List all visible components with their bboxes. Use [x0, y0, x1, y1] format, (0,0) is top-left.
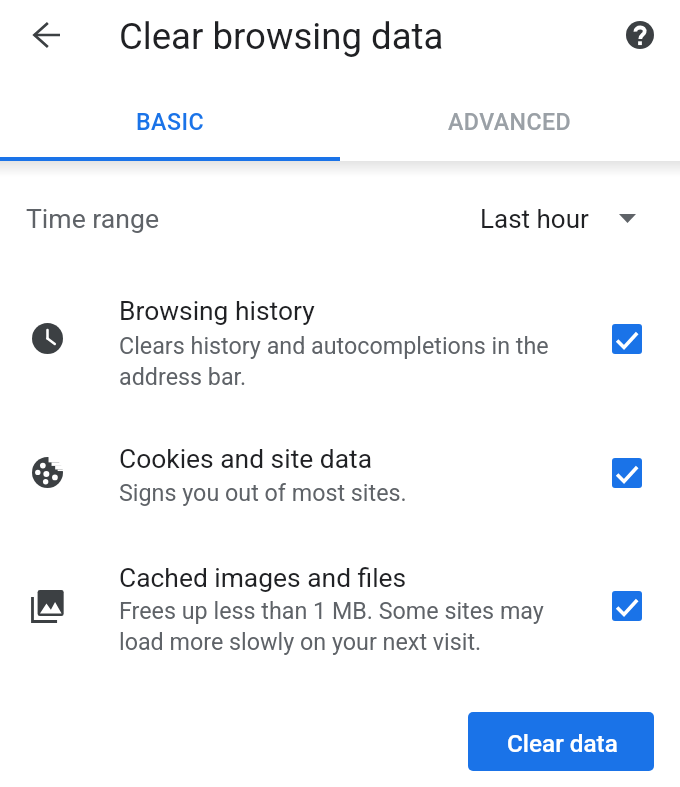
button[interactable]: Cookies and site data [0, 422, 680, 517]
staticText: Browsing history [119, 296, 315, 327]
staticText: Signs you out of most sites. [119, 479, 407, 506]
button[interactable]: ADVANCED [340, 83, 680, 159]
staticText: Clear data [507, 729, 618, 757]
other: Toggle Cached images and files [612, 591, 642, 621]
button[interactable]: Clear data [468, 712, 654, 771]
other: Toggle Browsing history [612, 324, 642, 354]
button[interactable]: BASIC [0, 83, 340, 159]
button[interactable]: Help [612, 7, 668, 63]
button[interactable]: Browsing history [0, 274, 680, 398]
staticText: Clear browsing data [119, 15, 444, 58]
staticText: Time range [26, 203, 160, 234]
staticText: BASIC [136, 108, 205, 135]
button[interactable]: Time range [0, 178, 680, 262]
other: Toggle Cookies and site data [612, 458, 642, 488]
staticText: Cached images and files [119, 563, 407, 594]
staticText: Frees up less than 1 MB. Some sites may … [119, 597, 544, 656]
staticText: ADVANCED [448, 108, 572, 135]
staticText: Last hour [480, 204, 589, 234]
button[interactable]: Cached images and files [0, 541, 680, 663]
staticText: Clears history and autocompletions in th… [119, 332, 549, 391]
button[interactable]: Back [18, 7, 74, 63]
staticText: Cookies and site data [119, 444, 373, 475]
